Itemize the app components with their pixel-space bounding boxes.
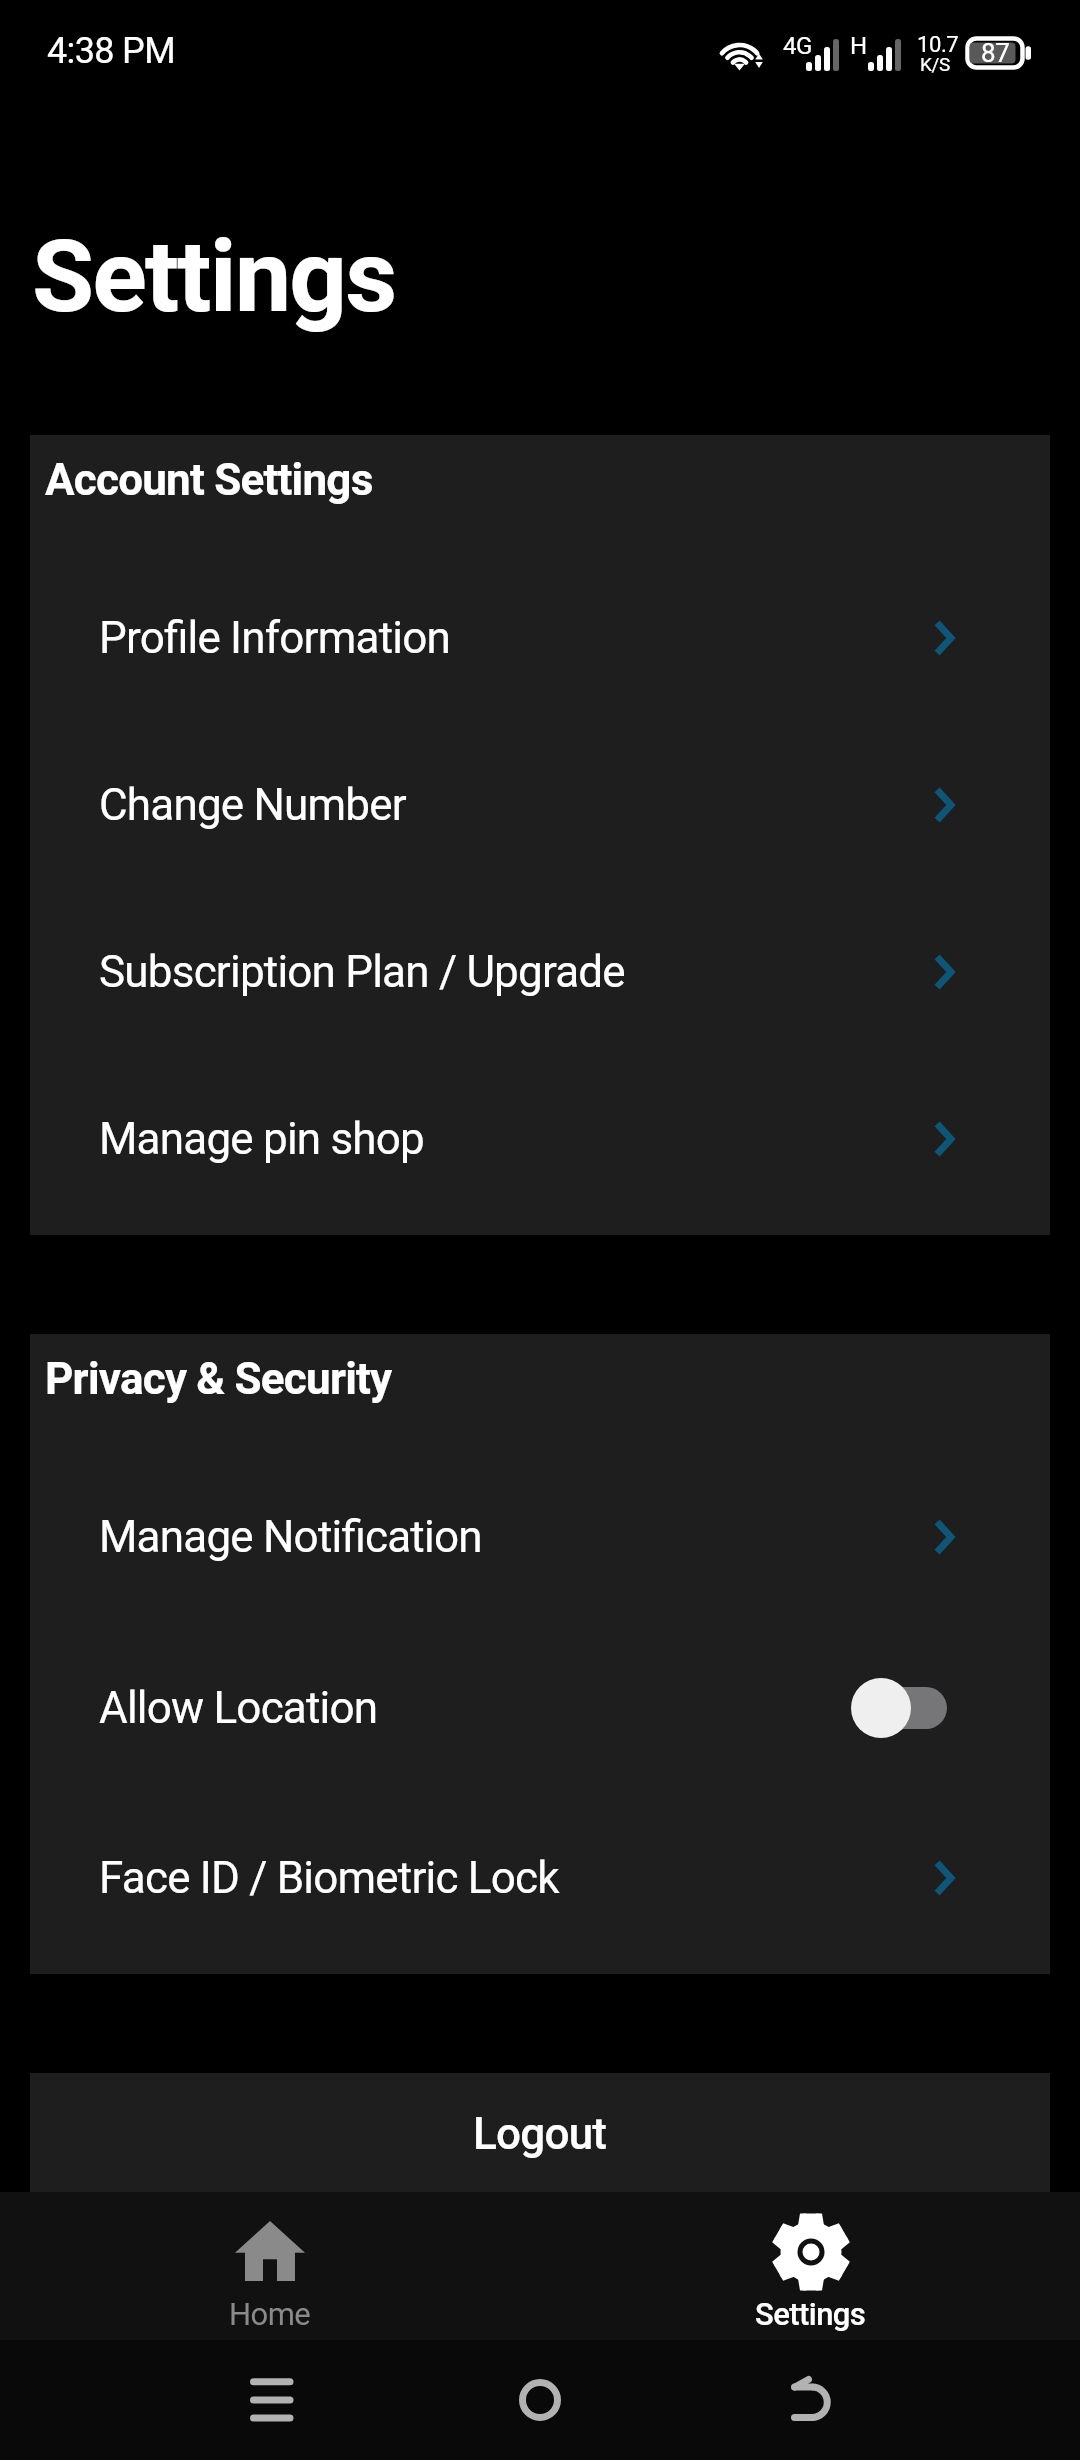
button[interactable]: Manage Notification [30,1453,1050,1620]
button[interactable]: Settings [675,2192,945,2340]
staticText: Home [229,2296,311,2332]
button[interactable]: Recent apps [240,2368,300,2432]
button[interactable]: Home [135,2192,405,2340]
button[interactable]: Subscription Plan / Upgrade [30,888,1050,1055]
staticText: 4:38 PM [47,30,175,72]
button[interactable]: Profile Information [30,554,1050,721]
button[interactable]: Home [510,2368,570,2432]
button[interactable]: Manage pin shop [30,1055,1050,1222]
staticText: Logout [473,2108,607,2160]
staticText: Subscription Plan / Upgrade [99,946,625,998]
button[interactable]: Allow Location [30,1624,1050,1791]
staticText: Allow Location [99,1682,378,1734]
staticText: Face ID / Biometric Lock [99,1852,559,1904]
staticText: Settings [32,217,396,335]
staticText: Profile Information [99,612,450,664]
button[interactable]: Change Number [30,721,1050,888]
button[interactable]: Face ID / Biometric Lock [30,1794,1050,1961]
staticText: 4G [783,32,812,60]
staticText: K/S [920,53,951,75]
staticText: Manage Notification [99,1511,482,1563]
staticText: Manage pin shop [99,1113,425,1165]
button[interactable]: Logout [30,2073,1050,2273]
staticText: H [850,32,867,60]
button[interactable]: Back [780,2368,840,2432]
staticText: 10.7 [917,32,959,58]
staticText: Privacy & Security [45,1353,392,1405]
staticText: 87 [981,38,1010,68]
staticText: Settings [755,2296,866,2332]
staticText: Account Settings [45,454,373,506]
staticText: Change Number [99,779,406,831]
